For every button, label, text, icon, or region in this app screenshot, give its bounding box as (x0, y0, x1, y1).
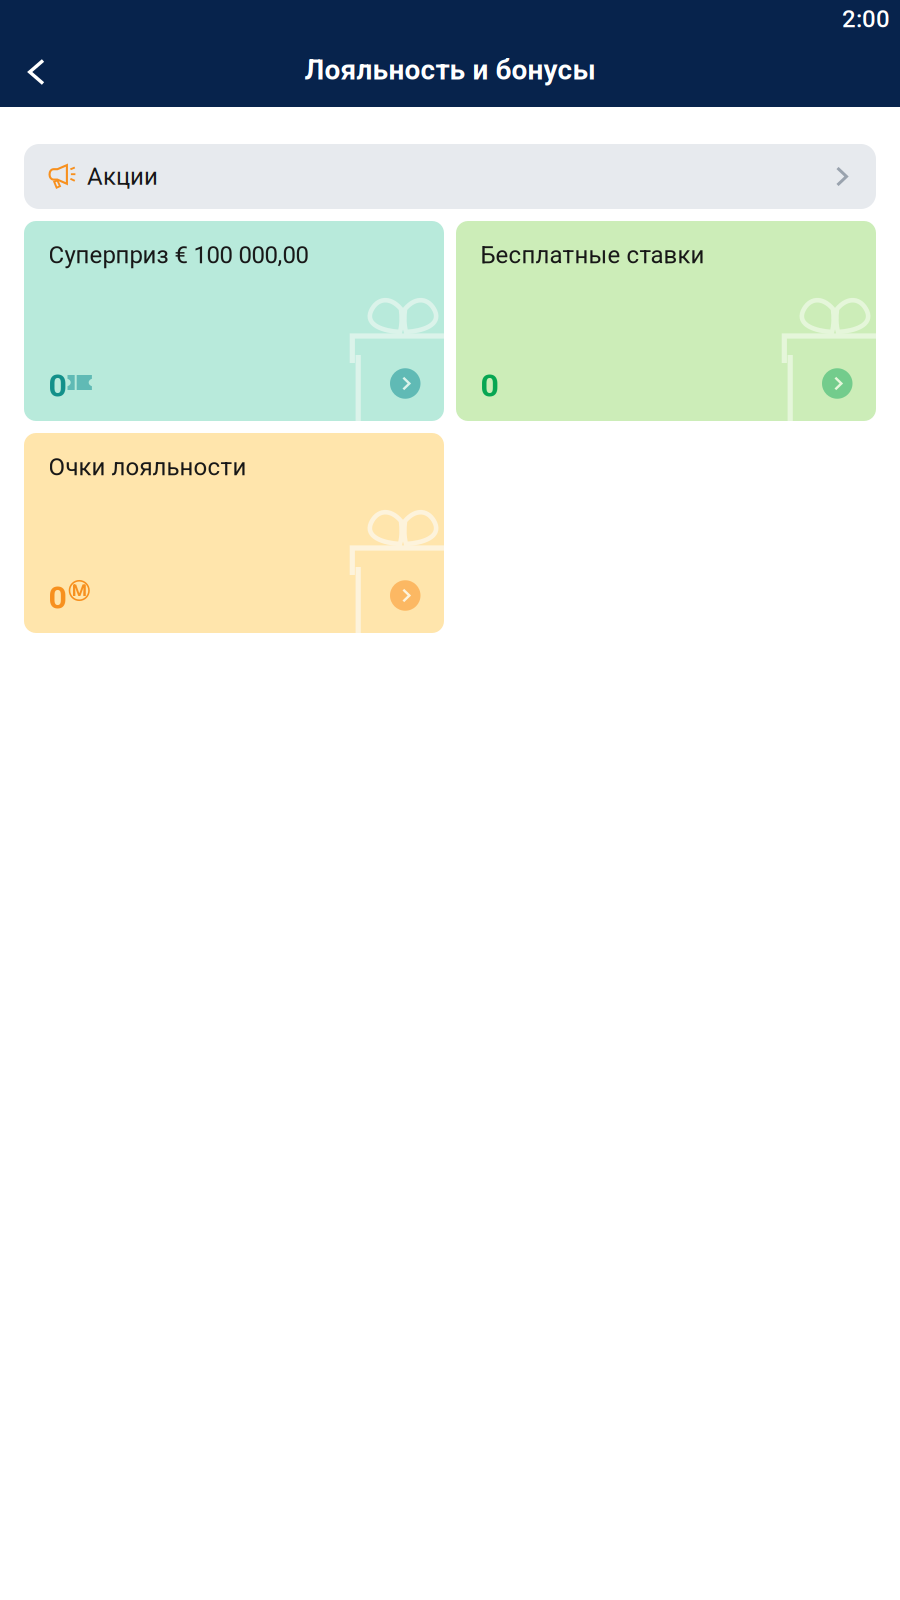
staticText: M (72, 580, 87, 601)
button[interactable]: Акции (24, 144, 876, 209)
staticText: 0 (48, 579, 66, 616)
staticText: Акции (87, 162, 158, 190)
staticText: Бесплатные ставки (480, 241, 704, 269)
button[interactable]: Бесплатные ставки (456, 221, 876, 421)
staticText: Суперприз € 100 000,00 (48, 241, 308, 269)
button[interactable]: Back (11, 46, 61, 98)
staticText: 0 (480, 367, 498, 404)
staticText: 0 (48, 367, 66, 404)
button[interactable]: Очки лояльности (24, 433, 444, 633)
staticText: Очки лояльности (48, 453, 246, 481)
button[interactable]: Суперприз € 100 000,00 (24, 221, 444, 421)
staticText: Лояльность и бонусы (304, 54, 595, 86)
staticText: 2:00 (842, 5, 890, 33)
